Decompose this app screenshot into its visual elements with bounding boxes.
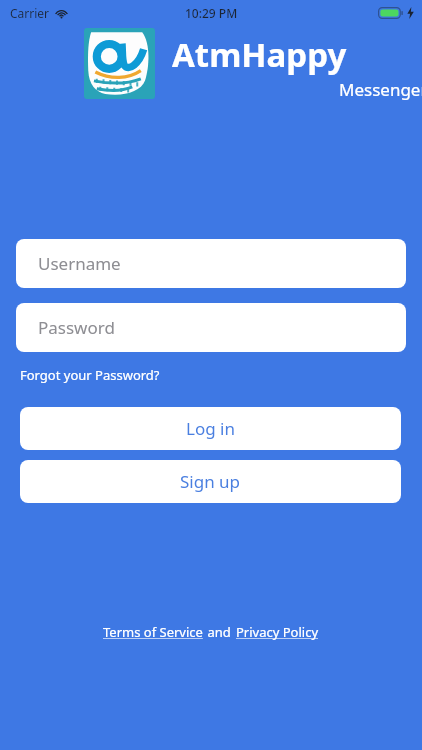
button[interactable]: Privacy Policy bbox=[235, 621, 320, 643]
button[interactable]: Username bbox=[16, 239, 406, 288]
staticText: Carrier bbox=[10, 5, 50, 21]
staticText: Forgot your Password? bbox=[20, 366, 160, 384]
staticText: Password bbox=[38, 316, 115, 339]
staticText: Privacy Policy bbox=[236, 623, 319, 641]
staticText: AtmHappy bbox=[172, 32, 347, 77]
button[interactable]: Sign up bbox=[20, 460, 401, 503]
staticText: Sign up bbox=[180, 470, 241, 493]
button[interactable]: Password bbox=[16, 303, 406, 352]
button[interactable]: Log in bbox=[20, 407, 401, 450]
button[interactable]: Forgot your Password? bbox=[14, 363, 166, 387]
staticText: Messenger bbox=[339, 78, 422, 101]
button[interactable]: Terms of Service bbox=[102, 621, 204, 643]
staticText: Log in bbox=[186, 417, 235, 440]
staticText: 10:29 PM bbox=[185, 5, 238, 21]
staticText: and bbox=[204, 623, 235, 641]
staticText: Terms of Service bbox=[103, 623, 203, 641]
staticText: Username bbox=[38, 252, 121, 275]
